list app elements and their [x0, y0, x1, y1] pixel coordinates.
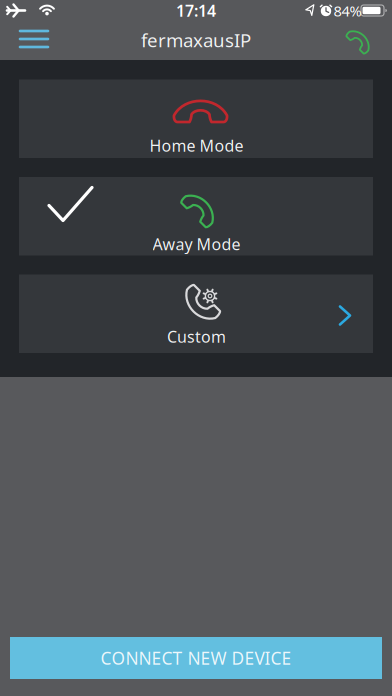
staticText: Custom: [167, 326, 226, 347]
staticText: 17:14: [176, 0, 216, 21]
button[interactable]: Home Mode: [19, 79, 373, 158]
staticText: Home Mode: [149, 135, 243, 156]
button[interactable]: CONNECT NEW DEVICE: [10, 637, 382, 679]
staticText: Away Mode: [152, 233, 240, 255]
button[interactable]: [14, 21, 54, 57]
button[interactable]: Away Mode: [19, 177, 373, 255]
staticText: fermaxausIP: [141, 28, 251, 52]
button[interactable]: Custom: [19, 274, 373, 353]
button[interactable]: [342, 22, 378, 58]
staticText: CONNECT NEW DEVICE: [100, 646, 291, 669]
staticText: 84%: [333, 1, 361, 20]
